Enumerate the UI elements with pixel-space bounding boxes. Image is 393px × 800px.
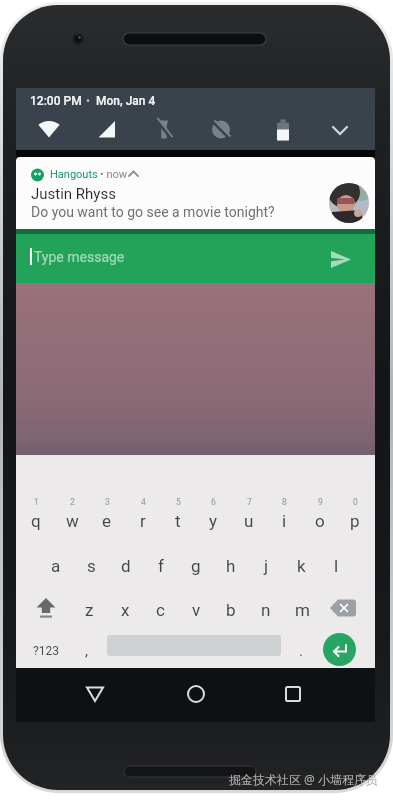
staticText: • now (100, 168, 128, 181)
staticText: o (315, 511, 325, 531)
staticText: 6 (211, 497, 216, 507)
staticText: c (156, 600, 165, 620)
button[interactable] (326, 597, 360, 619)
staticText: j (264, 556, 269, 576)
button[interactable]: g (180, 554, 212, 578)
button[interactable]: a (40, 554, 72, 578)
staticText: 12:00 PM (30, 94, 82, 108)
button[interactable]: o (304, 509, 336, 533)
button[interactable] (16, 668, 135, 722)
button[interactable]: Hangouts (16, 157, 375, 229)
button[interactable]: n (250, 598, 282, 622)
button[interactable]: . (285, 639, 317, 663)
staticText: l (334, 556, 339, 576)
button[interactable]: v (180, 598, 212, 622)
staticText: 5 (176, 497, 181, 507)
button[interactable]: k (285, 554, 317, 578)
staticText: 9 (318, 497, 323, 507)
button[interactable]: j (250, 554, 282, 578)
staticText: . (299, 642, 303, 660)
staticText: ?123 (33, 644, 59, 658)
staticText: b (226, 600, 236, 620)
staticText: Hangouts (50, 168, 98, 181)
button[interactable]: ?123 (26, 641, 66, 661)
button[interactable] (16, 88, 375, 150)
staticText: 7 (247, 497, 252, 507)
button[interactable]: z (73, 598, 105, 622)
staticText: Mon, Jan 4 (96, 94, 156, 108)
staticText: n (261, 600, 271, 620)
button[interactable]: w (56, 509, 88, 533)
button[interactable]: i (268, 509, 300, 533)
button[interactable]: b (215, 598, 247, 622)
staticText: v (192, 600, 201, 620)
button[interactable]: , (70, 639, 102, 663)
staticText: w (66, 511, 79, 531)
staticText: u (244, 511, 254, 531)
staticText: • (86, 94, 91, 108)
staticText: 4 (141, 497, 146, 507)
staticText: i (282, 511, 287, 531)
button[interactable] (323, 633, 356, 666)
button[interactable]: y (197, 509, 229, 533)
button[interactable] (135, 668, 255, 722)
button[interactable]: l (320, 554, 352, 578)
staticText: e (102, 511, 112, 531)
button[interactable]: u (233, 509, 265, 533)
staticText: q (31, 511, 41, 531)
staticText: Do you want to go see a movie tonight? (31, 204, 275, 220)
button[interactable]: f (145, 554, 177, 578)
staticText: k (297, 556, 306, 576)
button[interactable]: h (215, 554, 247, 578)
button[interactable]: d (110, 554, 142, 578)
button[interactable] (30, 595, 62, 621)
staticText: 掘金技术社区 @ 小墙程序员 (229, 771, 379, 787)
staticText: s (87, 556, 96, 576)
staticText: d (121, 556, 131, 576)
button[interactable]: s (75, 554, 107, 578)
button[interactable] (331, 251, 351, 268)
staticText: f (158, 556, 164, 576)
button[interactable]: c (144, 598, 176, 622)
staticText: 3 (105, 497, 110, 507)
staticText: g (191, 556, 201, 576)
button[interactable]: q (20, 509, 52, 533)
staticText: r (140, 511, 146, 531)
staticText: z (85, 600, 94, 620)
staticText: m (295, 600, 310, 620)
button[interactable] (255, 668, 375, 722)
staticText: t (175, 511, 181, 531)
staticText: , (85, 642, 88, 660)
staticText: 0 (353, 497, 358, 507)
staticText: a (51, 556, 61, 576)
staticText: 2 (70, 497, 75, 507)
button[interactable]: e (91, 509, 123, 533)
staticText: h (226, 556, 236, 576)
staticText: 8 (282, 497, 287, 507)
button[interactable]: x (109, 598, 141, 622)
button[interactable]: Type message (16, 229, 375, 283)
button[interactable]: p (339, 509, 371, 533)
staticText: p (350, 511, 360, 531)
button[interactable]: t (162, 509, 194, 533)
button[interactable]: r (127, 509, 159, 533)
staticText: Type message (34, 249, 125, 265)
staticText: Justin Rhyss (31, 185, 116, 203)
staticText: 1 (34, 497, 39, 507)
staticText: y (209, 511, 218, 531)
staticText: x (121, 600, 130, 620)
button[interactable]: m (286, 598, 318, 622)
